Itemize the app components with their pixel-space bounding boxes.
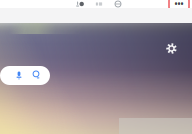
button[interactable]: Downloads [73, 0, 87, 8]
button[interactable]: Reading list [92, 0, 106, 8]
button[interactable]: Search [32, 71, 40, 80]
button[interactable]: Extensions [111, 0, 125, 8]
button[interactable]: More [169, 0, 189, 9]
button[interactable]: Search by voice [15, 71, 23, 80]
button[interactable]: Customise this page [166, 43, 177, 54]
staticText: ••• [174, 0, 183, 9]
